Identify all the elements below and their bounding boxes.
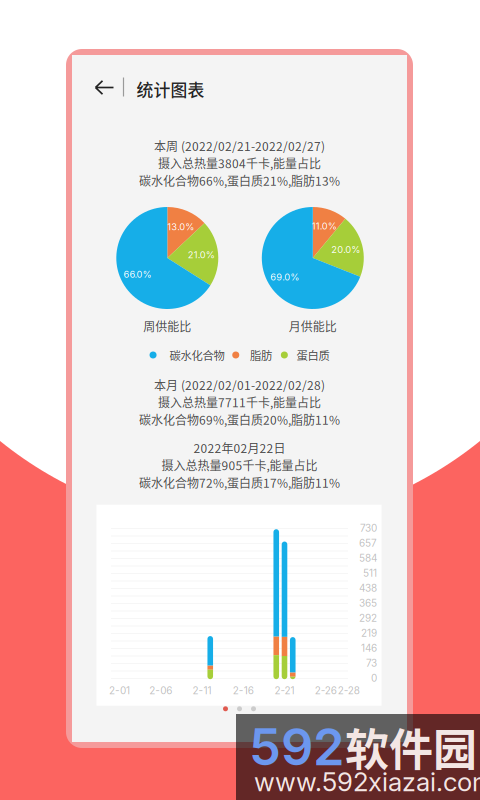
staticText: 碳水化合物72%,蛋白质17%,脂肪11% (139, 474, 340, 491)
staticText: 碳水化合物69%,蛋白质20%,脂肪11% (139, 411, 340, 428)
staticText: 2-01 (109, 685, 130, 697)
staticText: www.592xiazai.com (254, 766, 480, 797)
staticText: 摄入总热量3804千卡,能量占比 (158, 154, 321, 172)
staticText: 摄入总热量7711千卡,能量占比 (158, 393, 321, 411)
staticText: 2-16 (233, 685, 254, 697)
staticText: 碳水化合物66%,蛋白质21%,脂肪13% (139, 172, 340, 189)
staticText: 碳水化合物 (170, 347, 225, 363)
staticText: 66.0% (123, 269, 151, 280)
staticText: 2022年02月22日 (193, 439, 285, 456)
staticText: 292 (359, 612, 377, 624)
staticText: 摄入总热量905千卡,能量占比 (161, 456, 317, 474)
staticText: 脂肪 (250, 347, 272, 363)
staticText: 0 (371, 672, 377, 684)
staticText: 365 (359, 597, 377, 609)
staticText: 本月 (2022/02/01-2022/02/28) (154, 376, 325, 393)
staticText: 730 (360, 522, 377, 534)
staticText: 软件园 (345, 715, 477, 779)
staticText: 2-06 (149, 685, 172, 697)
staticText: 本周 (2022/02/21-2022/02/27) (154, 137, 325, 154)
staticText: 周供能比 (143, 317, 191, 335)
staticText: 438 (359, 582, 377, 594)
staticText: 657 (359, 537, 377, 549)
staticText: 20.0% (331, 244, 360, 255)
staticText: 592 (249, 716, 345, 777)
staticText: 11.0% (312, 220, 337, 232)
staticText: 21.0% (188, 249, 215, 260)
staticText: 219 (361, 627, 377, 639)
staticText: 146 (361, 642, 377, 654)
staticText: 13.0% (167, 221, 194, 232)
staticText: 584 (359, 552, 377, 564)
staticText: 69.0% (270, 271, 299, 283)
staticText: 2-11 (192, 685, 211, 697)
staticText: 511 (363, 567, 377, 579)
staticText: 73 (366, 657, 377, 669)
staticText: 月供能比 (289, 317, 337, 335)
staticText: 2-21 (274, 685, 294, 697)
staticText: 2-28 (338, 685, 360, 697)
staticText: 蛋白质 (296, 347, 329, 363)
staticText: 统计图表 (137, 77, 205, 101)
button[interactable]: 返回 (85, 71, 123, 104)
staticText: 2-26 (315, 685, 337, 697)
